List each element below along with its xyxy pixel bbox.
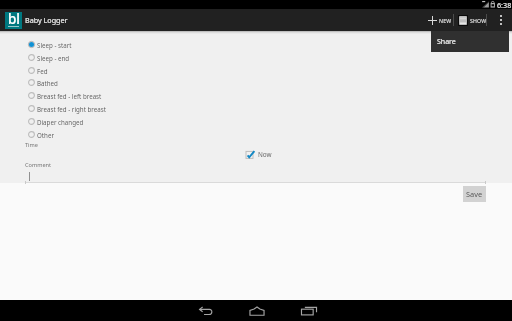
button[interactable]: Fed <box>22 64 322 77</box>
button[interactable]: Recent apps <box>283 300 334 321</box>
staticText: NEW <box>439 17 452 24</box>
staticText: Time <box>25 141 38 149</box>
button[interactable]: Breast fed - right breast <box>22 102 322 115</box>
staticText: Breast fed - right breast <box>37 105 106 113</box>
staticText: Now <box>258 150 272 159</box>
button[interactable]: bl <box>0 9 512 31</box>
staticText: Baby Logger <box>25 15 68 25</box>
button[interactable]: Save <box>463 186 486 202</box>
button[interactable]: Home <box>231 300 282 321</box>
staticText: Fed <box>37 67 48 75</box>
button[interactable]: Back <box>180 300 231 321</box>
button[interactable]: Sleep - end <box>22 51 322 64</box>
button[interactable]: Now <box>243 149 272 160</box>
button[interactable]: Bathed <box>22 76 322 89</box>
staticText: Bathed <box>37 79 58 87</box>
button[interactable]: Breast fed - left breast <box>22 89 322 102</box>
button[interactable] <box>25 169 486 183</box>
staticText: Share <box>437 37 456 47</box>
button[interactable]: More options <box>492 9 509 31</box>
staticText: 6:38 <box>497 0 512 9</box>
staticText: Other <box>37 131 54 139</box>
staticText: Save <box>466 189 483 199</box>
staticText: Sleep - end <box>37 54 70 62</box>
button[interactable]: Sleep - start <box>22 38 322 51</box>
button[interactable]: Other <box>22 128 322 141</box>
staticText: Diaper changed <box>37 118 84 126</box>
button[interactable]: SHOW <box>456 9 488 31</box>
button[interactable]: NEW <box>424 9 454 31</box>
staticText: Comment <box>25 161 52 169</box>
button[interactable]: Diaper changed <box>22 115 322 128</box>
staticText: Breast fed - left breast <box>37 92 102 100</box>
staticText: Sleep - start <box>37 41 72 49</box>
staticText: bl <box>8 10 21 27</box>
staticText: SHOW <box>470 17 487 24</box>
button[interactable]: Share <box>431 31 509 52</box>
